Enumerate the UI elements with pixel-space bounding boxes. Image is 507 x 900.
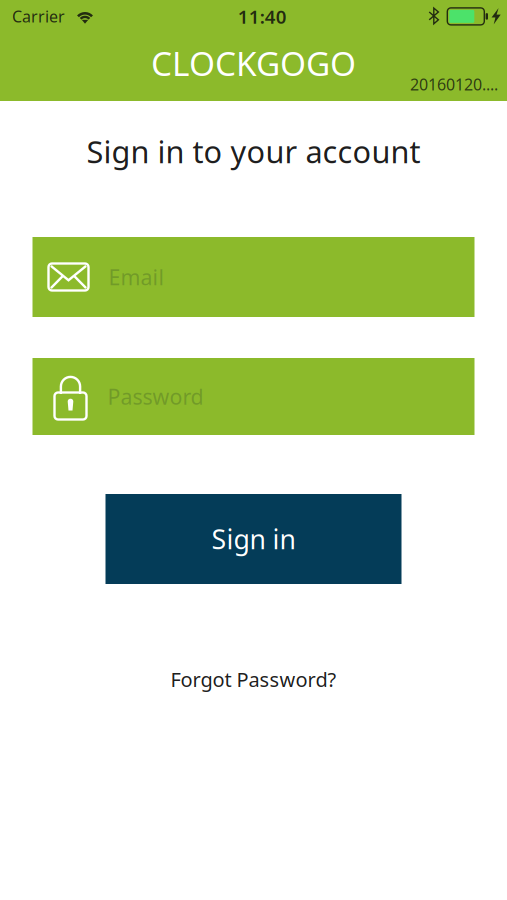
staticText: Sign in [211, 521, 295, 557]
staticText: Forgot Password? [170, 666, 336, 693]
staticText: CLOCKGOGO [151, 41, 356, 85]
button[interactable]: Password [32, 358, 474, 435]
button[interactable]: Email [32, 237, 474, 317]
staticText: Email [108, 263, 164, 291]
staticText: 11:40 [238, 4, 287, 29]
staticText: Password [107, 382, 203, 411]
staticText: Carrier [12, 6, 65, 27]
staticText: Sign in to your account [86, 131, 420, 172]
button[interactable]: Forgot Password? [160, 656, 346, 703]
button[interactable]: Sign in [105, 494, 401, 584]
staticText: 20160120.... [410, 74, 498, 95]
